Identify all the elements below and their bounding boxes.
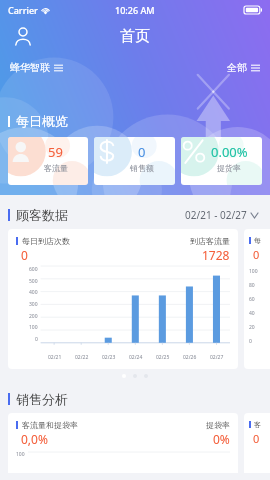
staticText: 0,0% [21, 431, 48, 447]
button[interactable]: 蜂华智联 [10, 58, 63, 77]
button[interactable]: 客 [244, 413, 270, 473]
staticText: 0 [21, 247, 28, 263]
staticText: 500 [29, 278, 38, 285]
staticText: 顾客数据 [16, 207, 68, 223]
staticText: 02/25 [156, 354, 170, 361]
staticText: 0 [249, 338, 252, 345]
staticText: 0 [253, 247, 260, 262]
button[interactable]: 0.00% [181, 137, 262, 185]
staticText: 20 [249, 324, 255, 331]
button[interactable]: 0 [94, 137, 175, 185]
staticText: 100 [249, 268, 258, 275]
staticText: 到店客流量 [190, 236, 230, 246]
staticText: 300 [29, 301, 38, 308]
staticText: 0% [213, 431, 230, 447]
staticText: 全部 [227, 61, 247, 74]
staticText: 02/27 [210, 354, 224, 361]
staticText: 0 [35, 336, 38, 343]
staticText: Carrier [8, 4, 38, 16]
button[interactable]: 全部 [227, 58, 260, 77]
staticText: 1728 [202, 247, 230, 263]
staticText: 02/21 - 02/27 [185, 208, 247, 222]
staticText: 销售分析 [16, 391, 68, 407]
button[interactable]: 每 [244, 229, 270, 369]
staticText: 每日概览 [16, 113, 68, 129]
staticText: 每 [254, 236, 261, 245]
button[interactable]: 02/21 - 02/27 [181, 204, 262, 226]
staticText: 60 [249, 296, 255, 303]
staticText: 02/21 [48, 354, 62, 361]
staticText: 提货率 [217, 163, 241, 173]
staticText: 400 [29, 289, 38, 296]
staticText: 02/22 [75, 354, 89, 361]
staticText: 02/24 [129, 354, 143, 361]
staticText: 200 [29, 313, 38, 320]
staticText: 首页 [120, 27, 150, 46]
staticText: 0 [138, 143, 146, 161]
staticText: 10:26 AM [115, 4, 155, 16]
button[interactable]: 客流量和提袋率 [8, 413, 238, 473]
staticText: 客流量 [44, 163, 68, 173]
staticText: 100 [29, 324, 38, 331]
staticText: 80 [249, 282, 255, 289]
staticText: 销售额 [130, 163, 154, 173]
button[interactable]: Profile [8, 21, 38, 51]
staticText: 02/26 [183, 354, 197, 361]
staticText: 600 [29, 266, 38, 273]
staticText: 100 [16, 451, 25, 458]
staticText: 每日到店次数 [22, 236, 70, 246]
staticText: 客 [254, 420, 261, 429]
button[interactable]: 每日到店次数 [8, 229, 238, 369]
staticText: 0 [253, 431, 260, 446]
button[interactable]: 59 [8, 137, 88, 185]
staticText: 59 [48, 143, 63, 161]
staticText: 02/23 [102, 354, 116, 361]
staticText: 蜂华智联 [10, 61, 50, 74]
staticText: 40 [249, 310, 255, 317]
staticText: 0.00% [211, 143, 248, 161]
staticText: 客流量和提袋率 [22, 420, 78, 430]
staticText: 提袋率 [206, 420, 230, 430]
